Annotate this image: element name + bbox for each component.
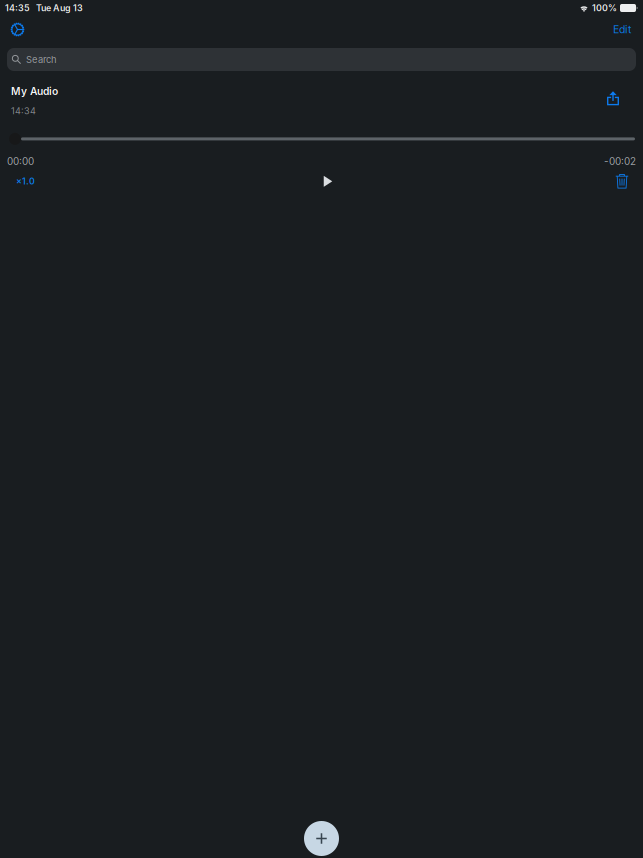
button[interactable]: ×1.0 — [7, 171, 45, 191]
button[interactable]: Settings — [5, 17, 30, 41]
button[interactable]: Share — [599, 85, 627, 111]
staticText: ×1.0 — [16, 176, 35, 187]
button[interactable]: New Recording — [304, 821, 339, 856]
staticText: -00:02 — [604, 155, 636, 167]
staticText: 14:35 — [5, 3, 30, 13]
staticText: Search — [26, 54, 57, 65]
button[interactable]: Delete — [609, 171, 636, 191]
staticText: My Audio — [11, 85, 58, 97]
staticText: Tue Aug 13 — [36, 3, 83, 13]
staticText: 00:00 — [7, 155, 34, 167]
staticText: 100% — [592, 3, 617, 13]
button[interactable]: Edit — [607, 17, 637, 41]
button[interactable]: Play — [313, 171, 341, 191]
staticText: Edit — [613, 23, 631, 36]
button[interactable]: Search — [7, 48, 636, 71]
staticText: 14:34 — [11, 105, 36, 116]
